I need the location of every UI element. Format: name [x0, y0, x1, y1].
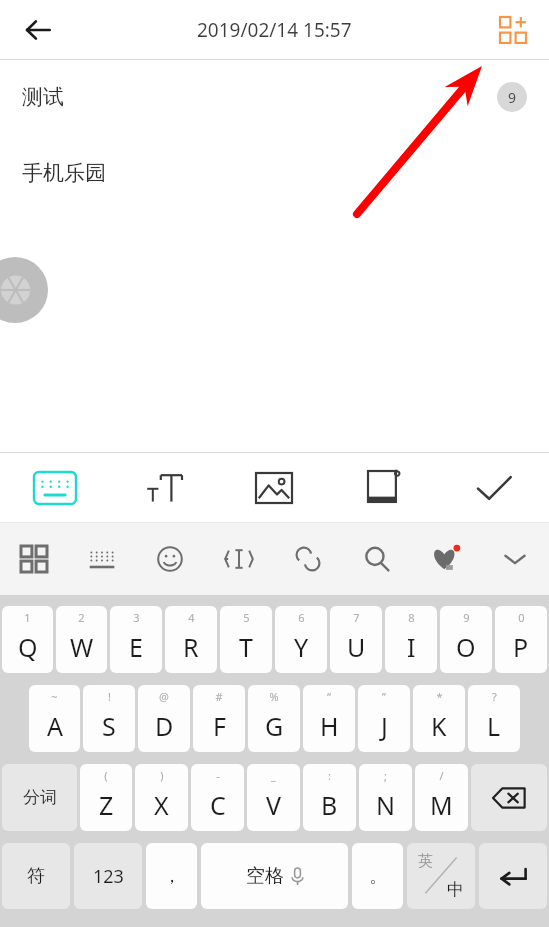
button[interactable]: Collapse	[480, 523, 549, 595]
button[interactable]: -	[191, 764, 244, 831]
button[interactable]: )	[135, 764, 188, 831]
button[interactable]: Search	[342, 523, 411, 595]
staticText: Q	[18, 630, 38, 664]
staticText: !	[108, 689, 111, 704]
staticText: A	[47, 709, 63, 743]
staticText: 分词	[23, 787, 57, 808]
button[interactable]: 空格	[201, 843, 348, 909]
staticText: ，	[163, 865, 181, 888]
button[interactable]: Apps	[0, 523, 68, 595]
staticText: W	[70, 630, 94, 664]
button[interactable]: /	[415, 764, 468, 831]
button[interactable]: (	[80, 764, 132, 831]
button[interactable]: ;	[359, 764, 412, 831]
staticText: T	[239, 630, 253, 664]
button[interactable]: 分词	[2, 764, 77, 831]
staticText: 4	[188, 610, 195, 625]
staticText: 7	[353, 610, 360, 625]
staticText: ”	[382, 689, 386, 704]
staticText: V	[266, 788, 282, 822]
button[interactable]: 7	[330, 606, 382, 673]
button[interactable]: #	[193, 685, 245, 752]
staticText: 5	[243, 610, 250, 625]
staticText: )	[160, 768, 164, 783]
staticText: :	[328, 768, 331, 783]
button[interactable]: Insert note	[329, 453, 439, 522]
button[interactable]: 4	[165, 606, 217, 673]
button[interactable]: 123	[74, 843, 142, 909]
button[interactable]: ?	[468, 685, 520, 752]
button[interactable]: Back	[10, 2, 66, 58]
staticText: ;	[384, 768, 387, 783]
staticText: U	[347, 630, 366, 664]
button[interactable]: ，	[146, 843, 197, 909]
button[interactable]: Keyboard	[0, 453, 109, 522]
button[interactable]: Add widget	[487, 4, 539, 56]
button[interactable]: 1	[2, 606, 53, 673]
staticText: 9	[508, 88, 517, 107]
staticText: 1	[24, 610, 31, 625]
button[interactable]: Clipboard	[273, 523, 342, 595]
staticText: S	[102, 709, 116, 743]
staticText: 手机乐园	[22, 160, 106, 186]
staticText: N	[376, 788, 396, 822]
staticText: B	[321, 788, 338, 822]
staticText: H	[320, 709, 339, 743]
button[interactable]: Switch English Chinese	[407, 843, 475, 909]
button[interactable]: :	[303, 764, 356, 831]
button[interactable]: Emoji	[136, 523, 204, 595]
button[interactable]: @	[138, 685, 190, 752]
staticText: 0	[518, 610, 525, 625]
button[interactable]: 2	[56, 606, 107, 673]
button[interactable]: Edit	[204, 523, 273, 595]
button[interactable]: 测试	[0, 82, 549, 112]
staticText: 中	[447, 879, 464, 900]
button[interactable]: Done	[439, 453, 549, 522]
button[interactable]: “	[303, 685, 355, 752]
button[interactable]: ”	[358, 685, 410, 752]
button[interactable]: ~	[29, 685, 80, 752]
staticText: 6	[298, 610, 305, 625]
button[interactable]: 0	[495, 606, 547, 673]
staticText: 8	[408, 610, 415, 625]
button[interactable]: _	[247, 764, 300, 831]
staticText: 3	[133, 610, 140, 625]
staticText: J	[381, 709, 388, 743]
staticText: M	[430, 788, 453, 822]
button[interactable]: !	[83, 685, 135, 752]
staticText: ?	[492, 689, 497, 704]
staticText: Z	[99, 788, 114, 822]
staticText: K	[431, 709, 447, 743]
staticText: P	[513, 630, 529, 664]
button[interactable]: Keyboard layout	[68, 523, 136, 595]
staticText: #	[215, 689, 223, 704]
button[interactable]: Enter	[479, 843, 547, 909]
button[interactable]: Backspace	[471, 764, 547, 831]
staticText: Y	[294, 630, 309, 664]
staticText: @	[159, 689, 169, 704]
button[interactable]: 9	[440, 606, 492, 673]
staticText: 测试	[22, 84, 64, 110]
button[interactable]: Insert image	[219, 453, 329, 522]
button[interactable]: 6	[275, 606, 327, 673]
staticText: 9	[463, 610, 470, 625]
button[interactable]: 5	[220, 606, 272, 673]
button[interactable]: %	[248, 685, 300, 752]
staticText: F	[213, 709, 226, 743]
button[interactable]: *	[413, 685, 465, 752]
staticText: E	[129, 630, 143, 664]
staticText: L	[487, 709, 501, 743]
button[interactable]: Favorites	[411, 523, 480, 595]
button[interactable]: 。	[352, 843, 403, 909]
staticText: X	[154, 788, 169, 822]
staticText: *	[436, 689, 443, 704]
button[interactable]: 符	[2, 843, 70, 909]
staticText: -	[216, 768, 220, 783]
button[interactable]: Text format	[109, 453, 219, 522]
button[interactable]: 8	[385, 606, 437, 673]
staticText: 123	[93, 864, 124, 889]
staticText: I	[407, 630, 416, 664]
staticText: /	[439, 768, 444, 783]
button[interactable]: 3	[110, 606, 162, 673]
staticText: D	[155, 709, 174, 743]
